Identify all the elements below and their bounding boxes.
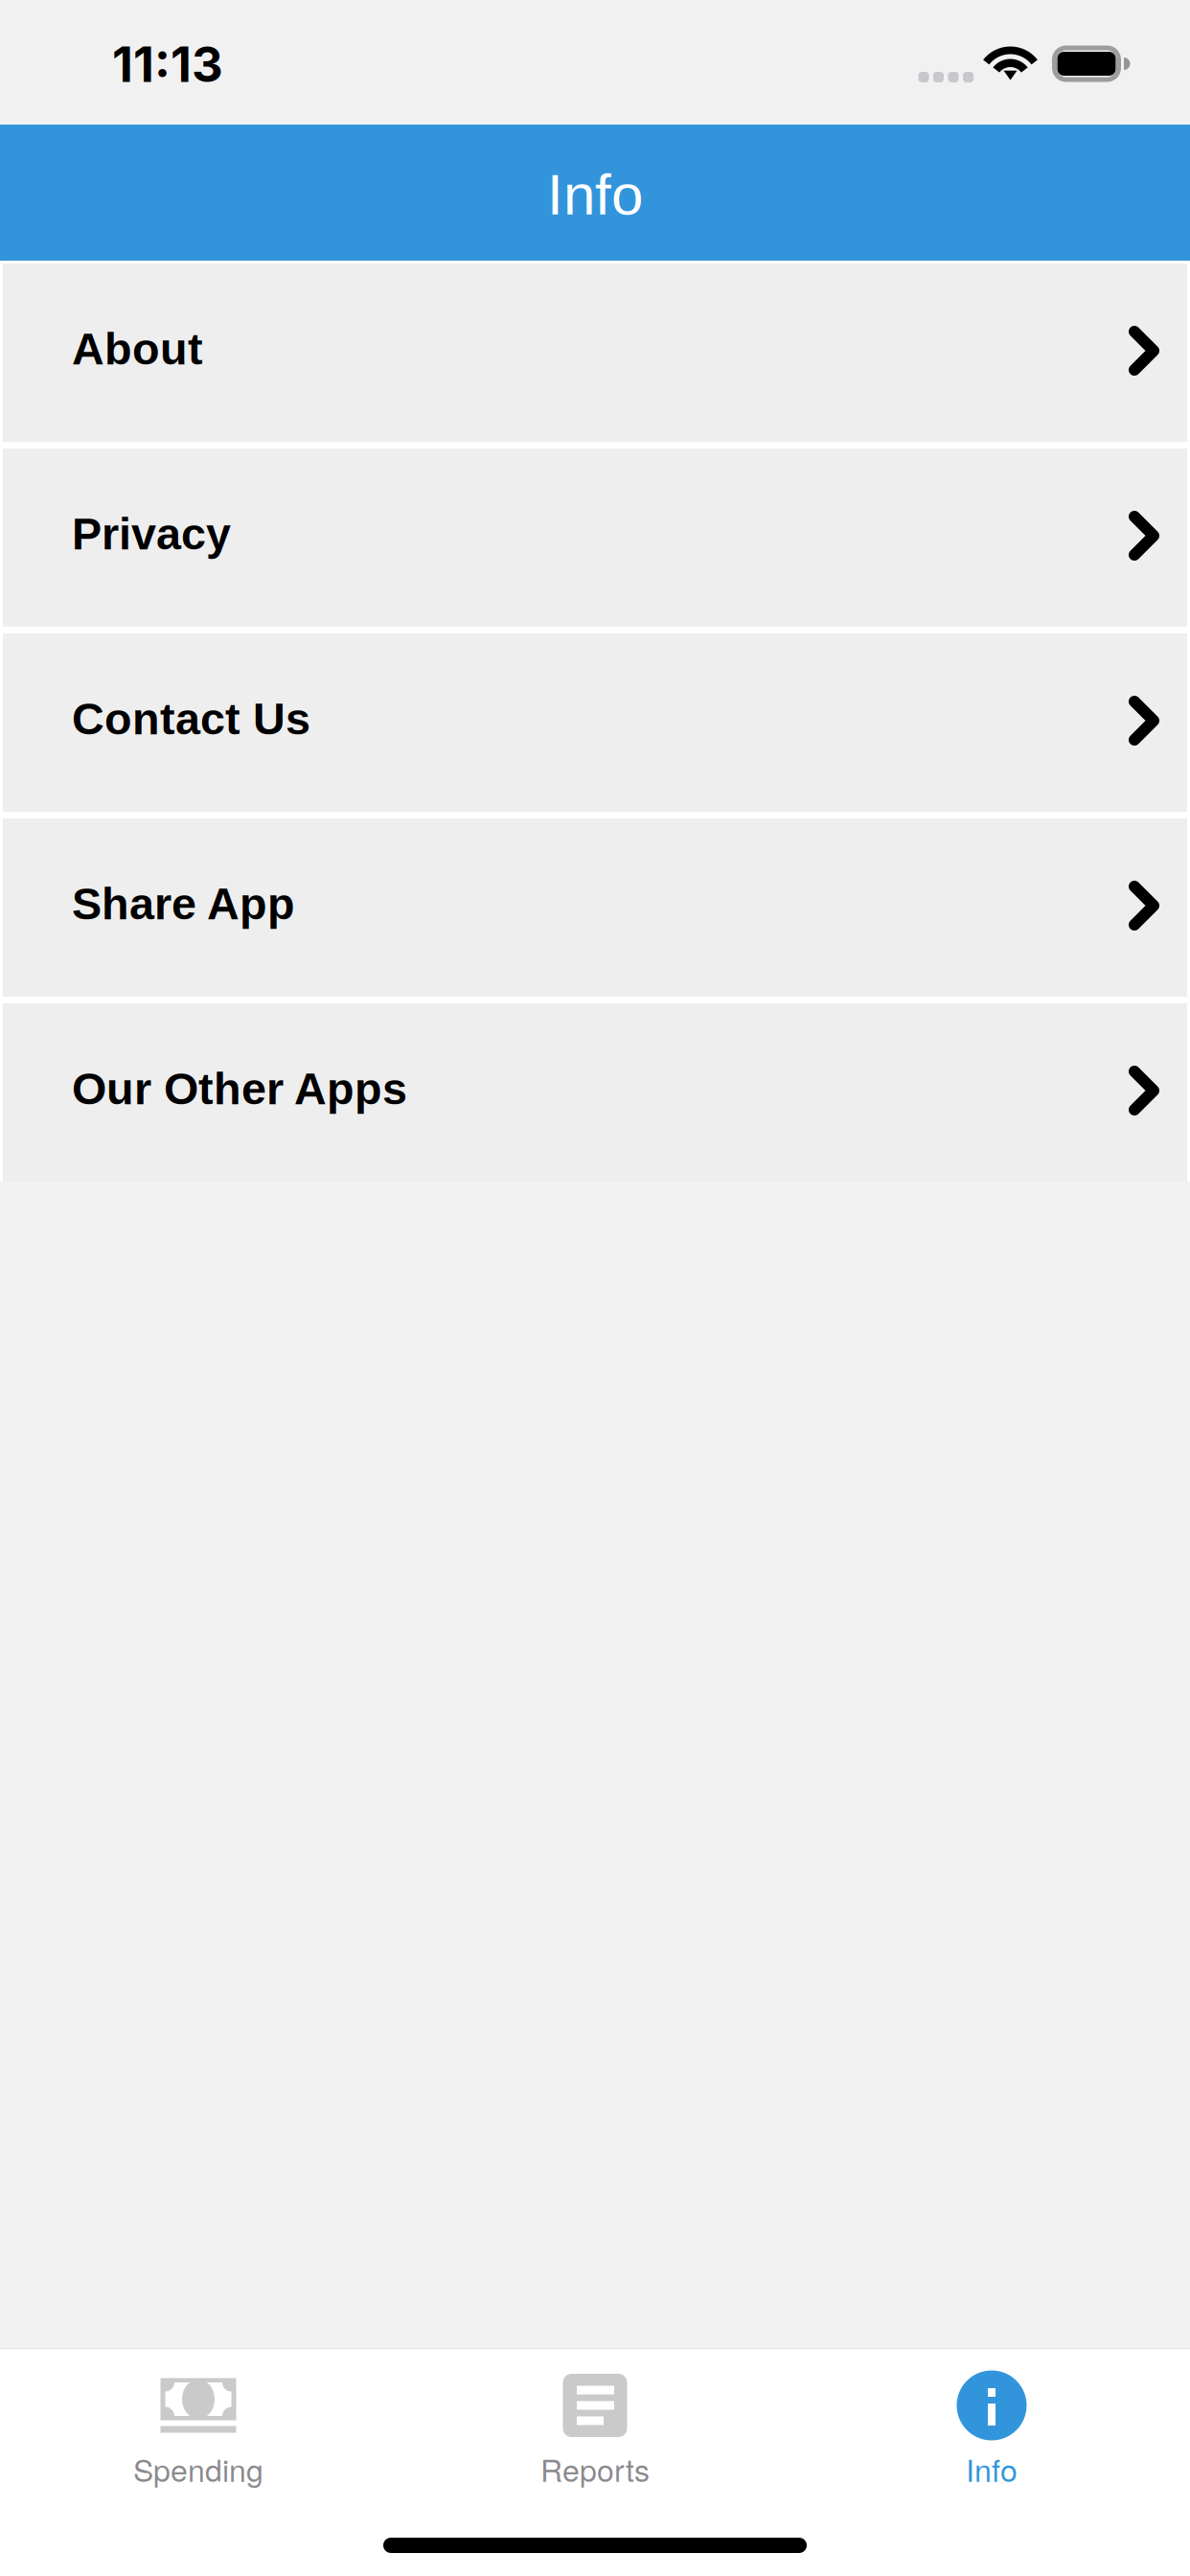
staticText: Contact Us: [72, 694, 310, 744]
button[interactable]: Info: [793, 2369, 1190, 2509]
button[interactable]: Privacy: [3, 448, 1187, 627]
button[interactable]: Contact Us: [3, 633, 1187, 812]
staticText: Info: [547, 162, 643, 227]
staticText: About: [72, 324, 203, 374]
staticText: Info: [966, 2447, 1018, 2491]
staticText: Privacy: [72, 509, 231, 559]
button[interactable]: Our Other Apps: [3, 1003, 1187, 1182]
staticText: Spending: [133, 2447, 263, 2491]
staticText: Share App: [72, 879, 295, 929]
staticText: 11:13: [112, 35, 223, 94]
staticText: Reports: [540, 2447, 650, 2491]
button[interactable]: Reports: [397, 2369, 793, 2509]
button[interactable]: About: [3, 264, 1187, 442]
button[interactable]: Spending: [0, 2369, 397, 2509]
staticText: Our Other Apps: [72, 1064, 407, 1114]
button[interactable]: Share App: [3, 818, 1187, 997]
